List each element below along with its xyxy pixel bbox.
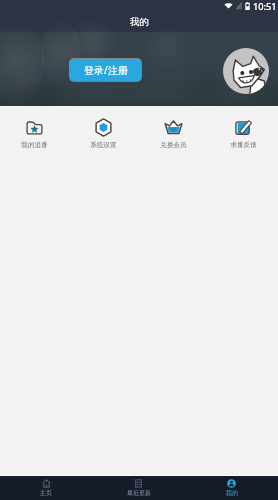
staticText: 兑换会员	[160, 141, 187, 149]
staticText: 我的	[130, 16, 149, 28]
staticText: 10:51	[253, 0, 277, 12]
staticText: 系统设置	[90, 141, 117, 149]
button[interactable]: 兑换会员	[138, 118, 208, 149]
staticText: 最近更新	[127, 489, 151, 497]
button[interactable]: 最近更新	[92, 476, 185, 500]
button[interactable]: 系统设置	[69, 118, 138, 149]
staticText: 我的	[226, 489, 238, 497]
staticText: 主页	[40, 489, 52, 497]
button[interactable]: Avatar	[223, 48, 269, 94]
button[interactable]: 我的	[185, 476, 278, 500]
staticText: 登录/注册	[84, 63, 128, 77]
button[interactable]: 求番反馈	[208, 118, 278, 149]
button[interactable]: 我的追番	[0, 118, 69, 149]
staticText: 求番反馈	[230, 141, 257, 149]
staticText: 我的追番	[21, 141, 48, 149]
button[interactable]: 登录/注册	[70, 59, 141, 81]
button[interactable]: 主页	[0, 476, 92, 500]
